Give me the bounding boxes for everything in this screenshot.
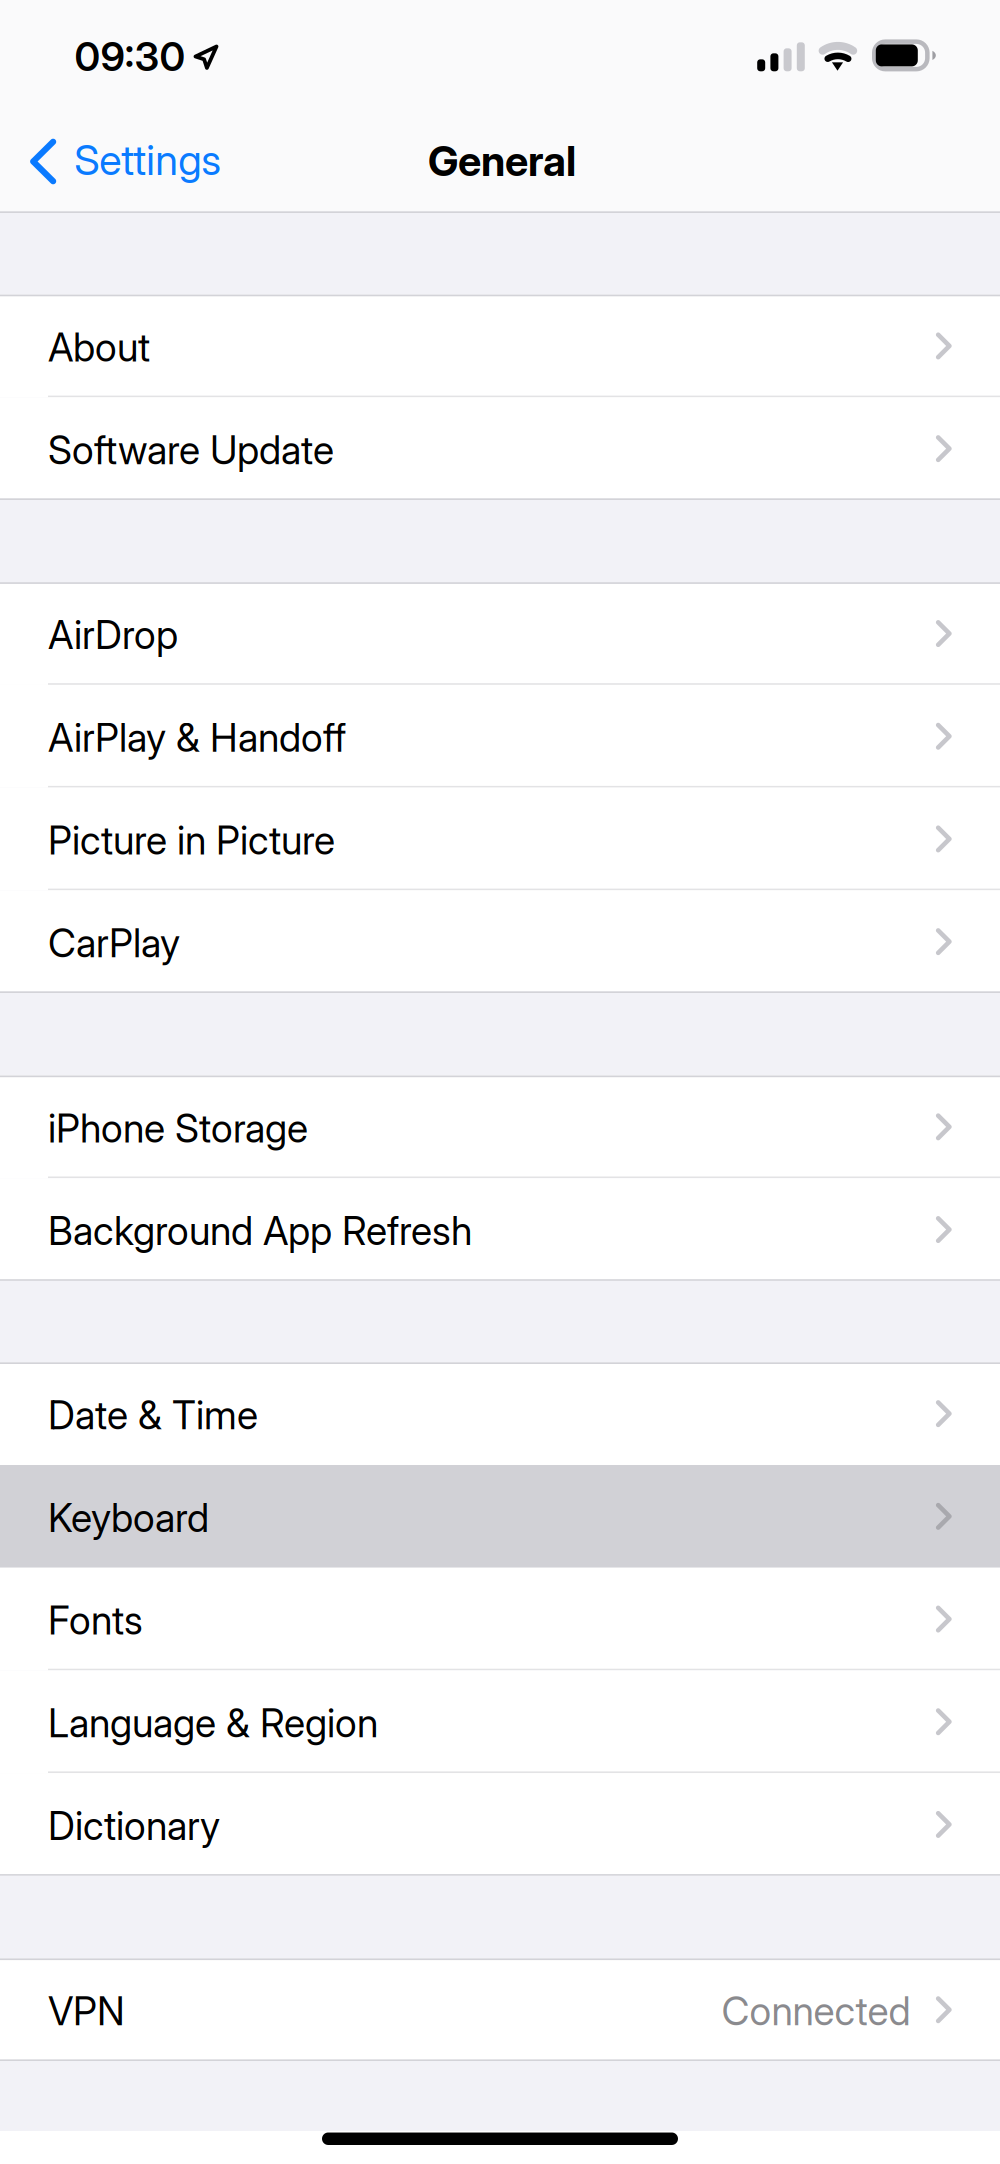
staticText: Picture in Picture: [48, 817, 335, 864]
button[interactable]: Date & Time: [0, 1362, 1000, 1465]
button[interactable]: Keyboard: [0, 1465, 1000, 1568]
button[interactable]: Fonts: [0, 1568, 1000, 1670]
staticText: Keyboard: [48, 1494, 209, 1541]
button[interactable]: AirDrop: [0, 582, 1000, 685]
staticText: iPhone Storage: [48, 1105, 308, 1152]
staticText: CarPlay: [48, 920, 180, 967]
button[interactable]: AirPlay & Handoff: [0, 685, 1000, 788]
staticText: AirDrop: [48, 612, 178, 658]
staticText: AirPlay & Handoff: [48, 714, 346, 761]
staticText: Settings: [74, 135, 221, 185]
staticText: About: [48, 324, 150, 371]
button[interactable]: About: [0, 295, 1000, 397]
staticText: 09:30: [74, 32, 185, 81]
staticText: Connected: [722, 1988, 911, 2035]
button[interactable]: Language & Region: [0, 1670, 1000, 1773]
button[interactable]: Background App Refresh: [0, 1178, 1000, 1281]
button[interactable]: CarPlay: [0, 890, 1000, 993]
staticText: Date & Time: [48, 1392, 258, 1439]
button[interactable]: VPN: [0, 1958, 1000, 2061]
staticText: Background App Refresh: [48, 1208, 472, 1254]
button[interactable]: Picture in Picture: [0, 788, 1000, 890]
staticText: Fonts: [48, 1597, 143, 1644]
staticText: Dictionary: [48, 1803, 220, 1849]
staticText: Software Update: [48, 427, 334, 474]
button[interactable]: Software Update: [0, 397, 1000, 500]
button[interactable]: Dictionary: [0, 1773, 1000, 1876]
button[interactable]: Settings: [0, 105, 239, 213]
staticText: Language & Region: [48, 1700, 378, 1747]
staticText: General: [428, 136, 576, 186]
staticText: VPN: [48, 1988, 125, 2035]
button[interactable]: iPhone Storage: [0, 1075, 1000, 1178]
